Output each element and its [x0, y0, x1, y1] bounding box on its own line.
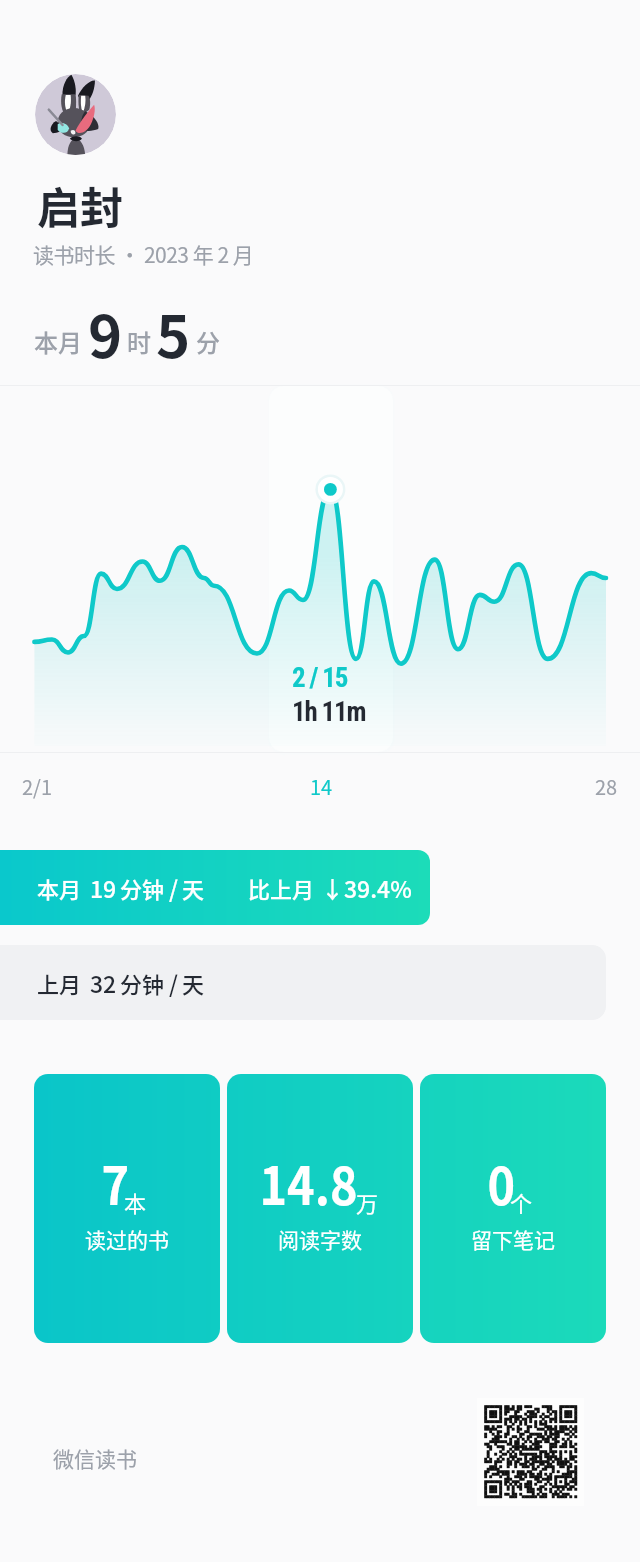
- staticText: 分钟: [120, 967, 165, 999]
- staticText: 2 / 15: [292, 662, 348, 694]
- button[interactable]: 0: [420, 1074, 606, 1343]
- staticText: 万: [356, 1186, 379, 1218]
- staticText: 微信读书: [53, 1443, 137, 1473]
- staticText: 比上月: [248, 872, 315, 904]
- staticText: 1h 11m: [292, 696, 366, 728]
- staticText: 19: [90, 871, 117, 904]
- staticText: 时: [127, 324, 151, 359]
- staticText: 读书时长 · 2023 年 2 月: [33, 239, 254, 269]
- staticText: 本: [124, 1186, 147, 1218]
- staticText: 阅读字数: [278, 1224, 362, 1254]
- staticText: 9: [88, 291, 123, 375]
- staticText: 分: [196, 324, 220, 359]
- staticText: 32: [90, 966, 117, 999]
- button[interactable]: 14.8: [227, 1074, 413, 1343]
- staticText: 分钟: [120, 872, 165, 904]
- staticText: 本月: [34, 324, 82, 359]
- staticText: 28: [595, 772, 618, 801]
- staticText: 上月: [37, 967, 82, 999]
- staticText: 留下笔记: [471, 1224, 555, 1254]
- staticText: /: [169, 871, 178, 904]
- button[interactable]: 本月: [0, 850, 430, 925]
- staticText: 启封: [37, 174, 123, 236]
- staticText: 5: [156, 291, 191, 375]
- staticText: 读过的书: [85, 1224, 169, 1254]
- other: QR code: [477, 1398, 584, 1506]
- staticText: 个: [510, 1186, 533, 1218]
- staticText: 7: [102, 1145, 129, 1220]
- button[interactable]: 7: [34, 1074, 220, 1343]
- staticText: 14.8: [259, 1145, 358, 1220]
- staticText: 本月: [37, 872, 82, 904]
- staticText: /: [169, 966, 178, 999]
- staticText: 天: [182, 872, 205, 904]
- staticText: ↓39.4%: [321, 871, 412, 904]
- button[interactable]: 上月: [0, 945, 606, 1020]
- staticText: 14: [310, 772, 333, 801]
- staticText: 0: [487, 1145, 515, 1220]
- staticText: 2/1: [22, 772, 53, 801]
- staticText: 天: [182, 967, 205, 999]
